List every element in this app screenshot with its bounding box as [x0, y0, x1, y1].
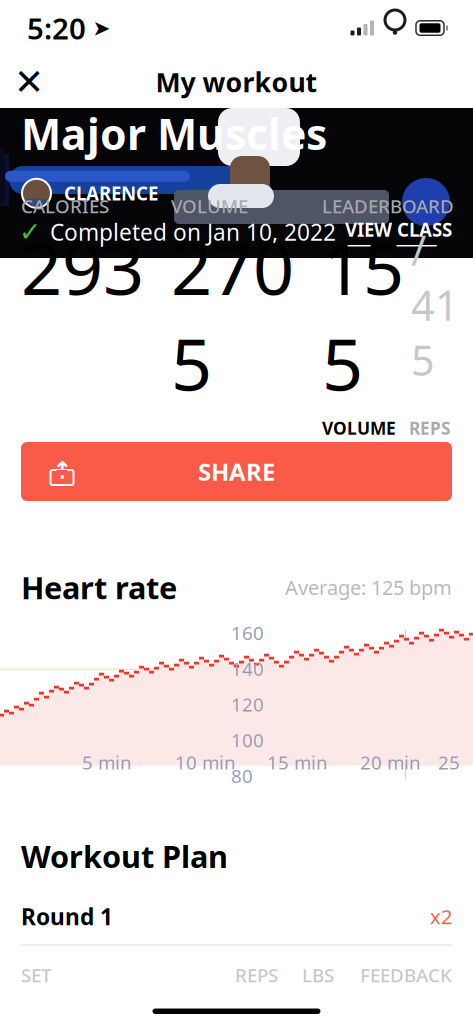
staticText: 160: [231, 620, 264, 645]
staticText: VOLUME: [171, 194, 248, 218]
staticText: x2: [430, 903, 452, 930]
staticText: FEEDBACK: [360, 963, 452, 987]
staticText: Workout Plan: [21, 836, 228, 876]
staticText: REPS: [409, 417, 451, 440]
staticText: 80: [231, 763, 253, 788]
staticText: ✓: [19, 217, 41, 247]
button[interactable]: VIEW CLASS: [345, 217, 452, 246]
staticText: Average: 125 bpm: [285, 574, 452, 601]
staticText: VOLUME: [322, 417, 396, 440]
staticText: Heart rate: [21, 567, 177, 608]
staticText: My workout: [155, 64, 317, 100]
staticText: LBS: [302, 963, 334, 987]
staticText: 10 min: [175, 750, 236, 775]
staticText: ✕: [14, 62, 44, 102]
staticText: 140: [231, 656, 264, 681]
button[interactable]: REPS: [409, 417, 451, 445]
staticText: ↑: [52, 457, 72, 484]
button[interactable]: VOLUME: [322, 417, 396, 445]
staticText: SET: [21, 963, 51, 987]
staticText: SHARE: [198, 456, 275, 487]
staticText: 5 min: [82, 750, 132, 775]
staticText: Major Muscles: [21, 105, 327, 162]
staticText: REPS: [235, 963, 278, 987]
staticText: 155: [322, 219, 404, 411]
staticText: VIEW CLASS: [345, 217, 452, 242]
button[interactable]: ↑: [0, 442, 473, 501]
staticText: 25: [438, 750, 465, 775]
staticText: 15 min: [267, 750, 328, 775]
staticText: /415: [411, 222, 459, 387]
staticText: LEADERBOARD: [322, 194, 454, 218]
staticText: 2705: [171, 219, 294, 411]
staticText: ➤: [92, 16, 110, 40]
staticText: 100: [231, 728, 264, 752]
staticText: 5:20: [27, 8, 86, 47]
staticText: CALORIES: [21, 194, 109, 218]
staticText: Round 1: [21, 901, 113, 931]
staticText: CLARENCE: [64, 181, 158, 206]
staticText: Completed on Jan 10, 2022: [50, 217, 336, 247]
staticText: 293: [21, 219, 144, 315]
button[interactable]: Close: [5, 59, 53, 105]
staticText: 20 min: [360, 750, 421, 775]
staticText: 120: [231, 692, 264, 717]
